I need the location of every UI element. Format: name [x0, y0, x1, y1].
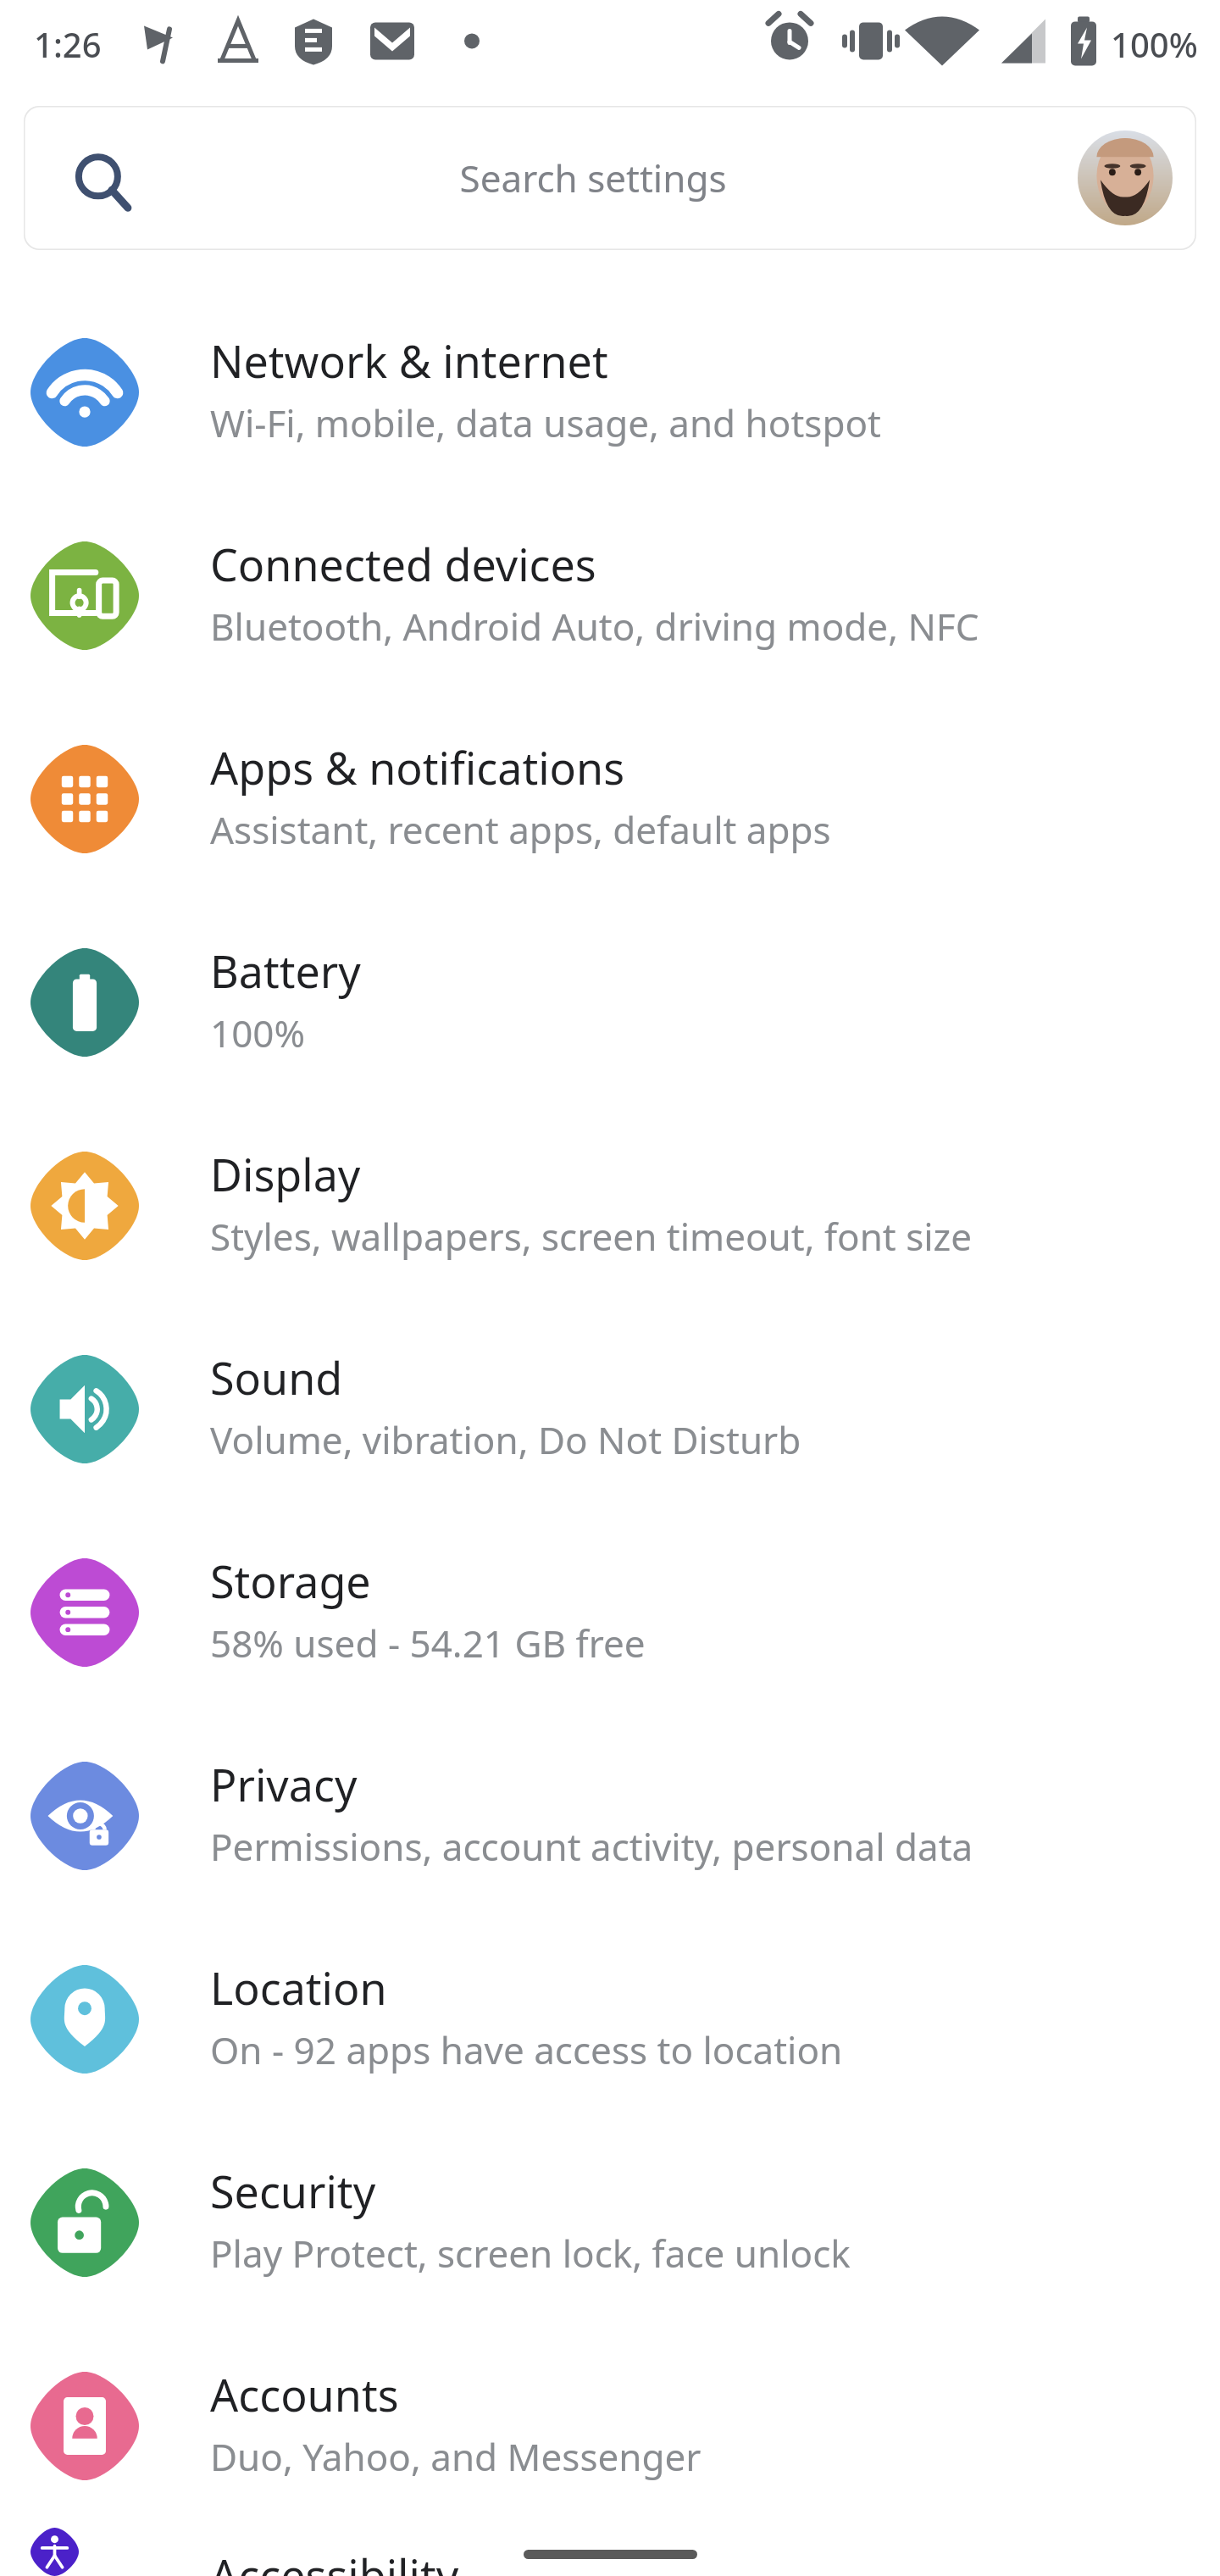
- staticText: 100%: [1111, 21, 1198, 67]
- staticText: Duo, Yahoo, and Messenger: [210, 2431, 701, 2482]
- staticText: Security: [210, 2161, 376, 2221]
- staticText: Accessibility: [210, 2545, 459, 2576]
- staticText: Styles, wallpapers, screen timeout, font…: [210, 1211, 973, 1262]
- staticText: Display: [210, 1144, 361, 1204]
- staticText: Play Protect, screen lock, face unlock: [210, 2228, 851, 2279]
- button[interactable]: Search settings: [24, 106, 1196, 250]
- button[interactable]: Apps & notifications: [0, 697, 1220, 901]
- staticText: Apps & notifications: [210, 737, 625, 797]
- staticText: Network & internet: [210, 330, 608, 391]
- button[interactable]: Battery: [0, 901, 1220, 1104]
- staticText: Battery: [210, 941, 361, 1001]
- button[interactable]: Sound: [0, 1307, 1220, 1511]
- staticText: On - 92 apps have access to location: [210, 2024, 843, 2075]
- staticText: Volume, vibration, Do Not Disturb: [210, 1414, 801, 1465]
- staticText: Privacy: [210, 1754, 358, 1814]
- staticText: Permissions, account activity, personal …: [210, 1821, 973, 1872]
- staticText: Wi-Fi, mobile, data usage, and hotspot: [210, 397, 881, 448]
- staticText: Location: [210, 1957, 387, 2018]
- button[interactable]: Storage: [0, 1511, 1220, 1714]
- staticText: Storage: [210, 1551, 371, 1611]
- staticText: Connected devices: [210, 534, 596, 594]
- staticText: Assistant, recent apps, default apps: [210, 804, 831, 855]
- staticText: 58% used - 54.21 GB free: [210, 1618, 646, 1668]
- button[interactable]: Accounts: [0, 2324, 1220, 2528]
- button[interactable]: Account avatar: [1078, 130, 1173, 225]
- staticText: 100%: [210, 1008, 306, 1058]
- button[interactable]: Security: [0, 2121, 1220, 2324]
- button[interactable]: Connected devices: [0, 494, 1220, 697]
- button[interactable]: Display: [0, 1104, 1220, 1307]
- button[interactable]: Location: [0, 1918, 1220, 2121]
- staticText: Bluetooth, Android Auto, driving mode, N…: [210, 601, 979, 652]
- staticText: Search settings: [459, 153, 727, 203]
- button[interactable]: Network & internet: [0, 291, 1220, 494]
- staticText: 1:26: [34, 21, 102, 67]
- button[interactable]: Privacy: [0, 1714, 1220, 1918]
- staticText: Accounts: [210, 2364, 399, 2424]
- staticText: Sound: [210, 1347, 343, 1407]
- button[interactable]: Accessibility: [0, 2528, 1220, 2576]
